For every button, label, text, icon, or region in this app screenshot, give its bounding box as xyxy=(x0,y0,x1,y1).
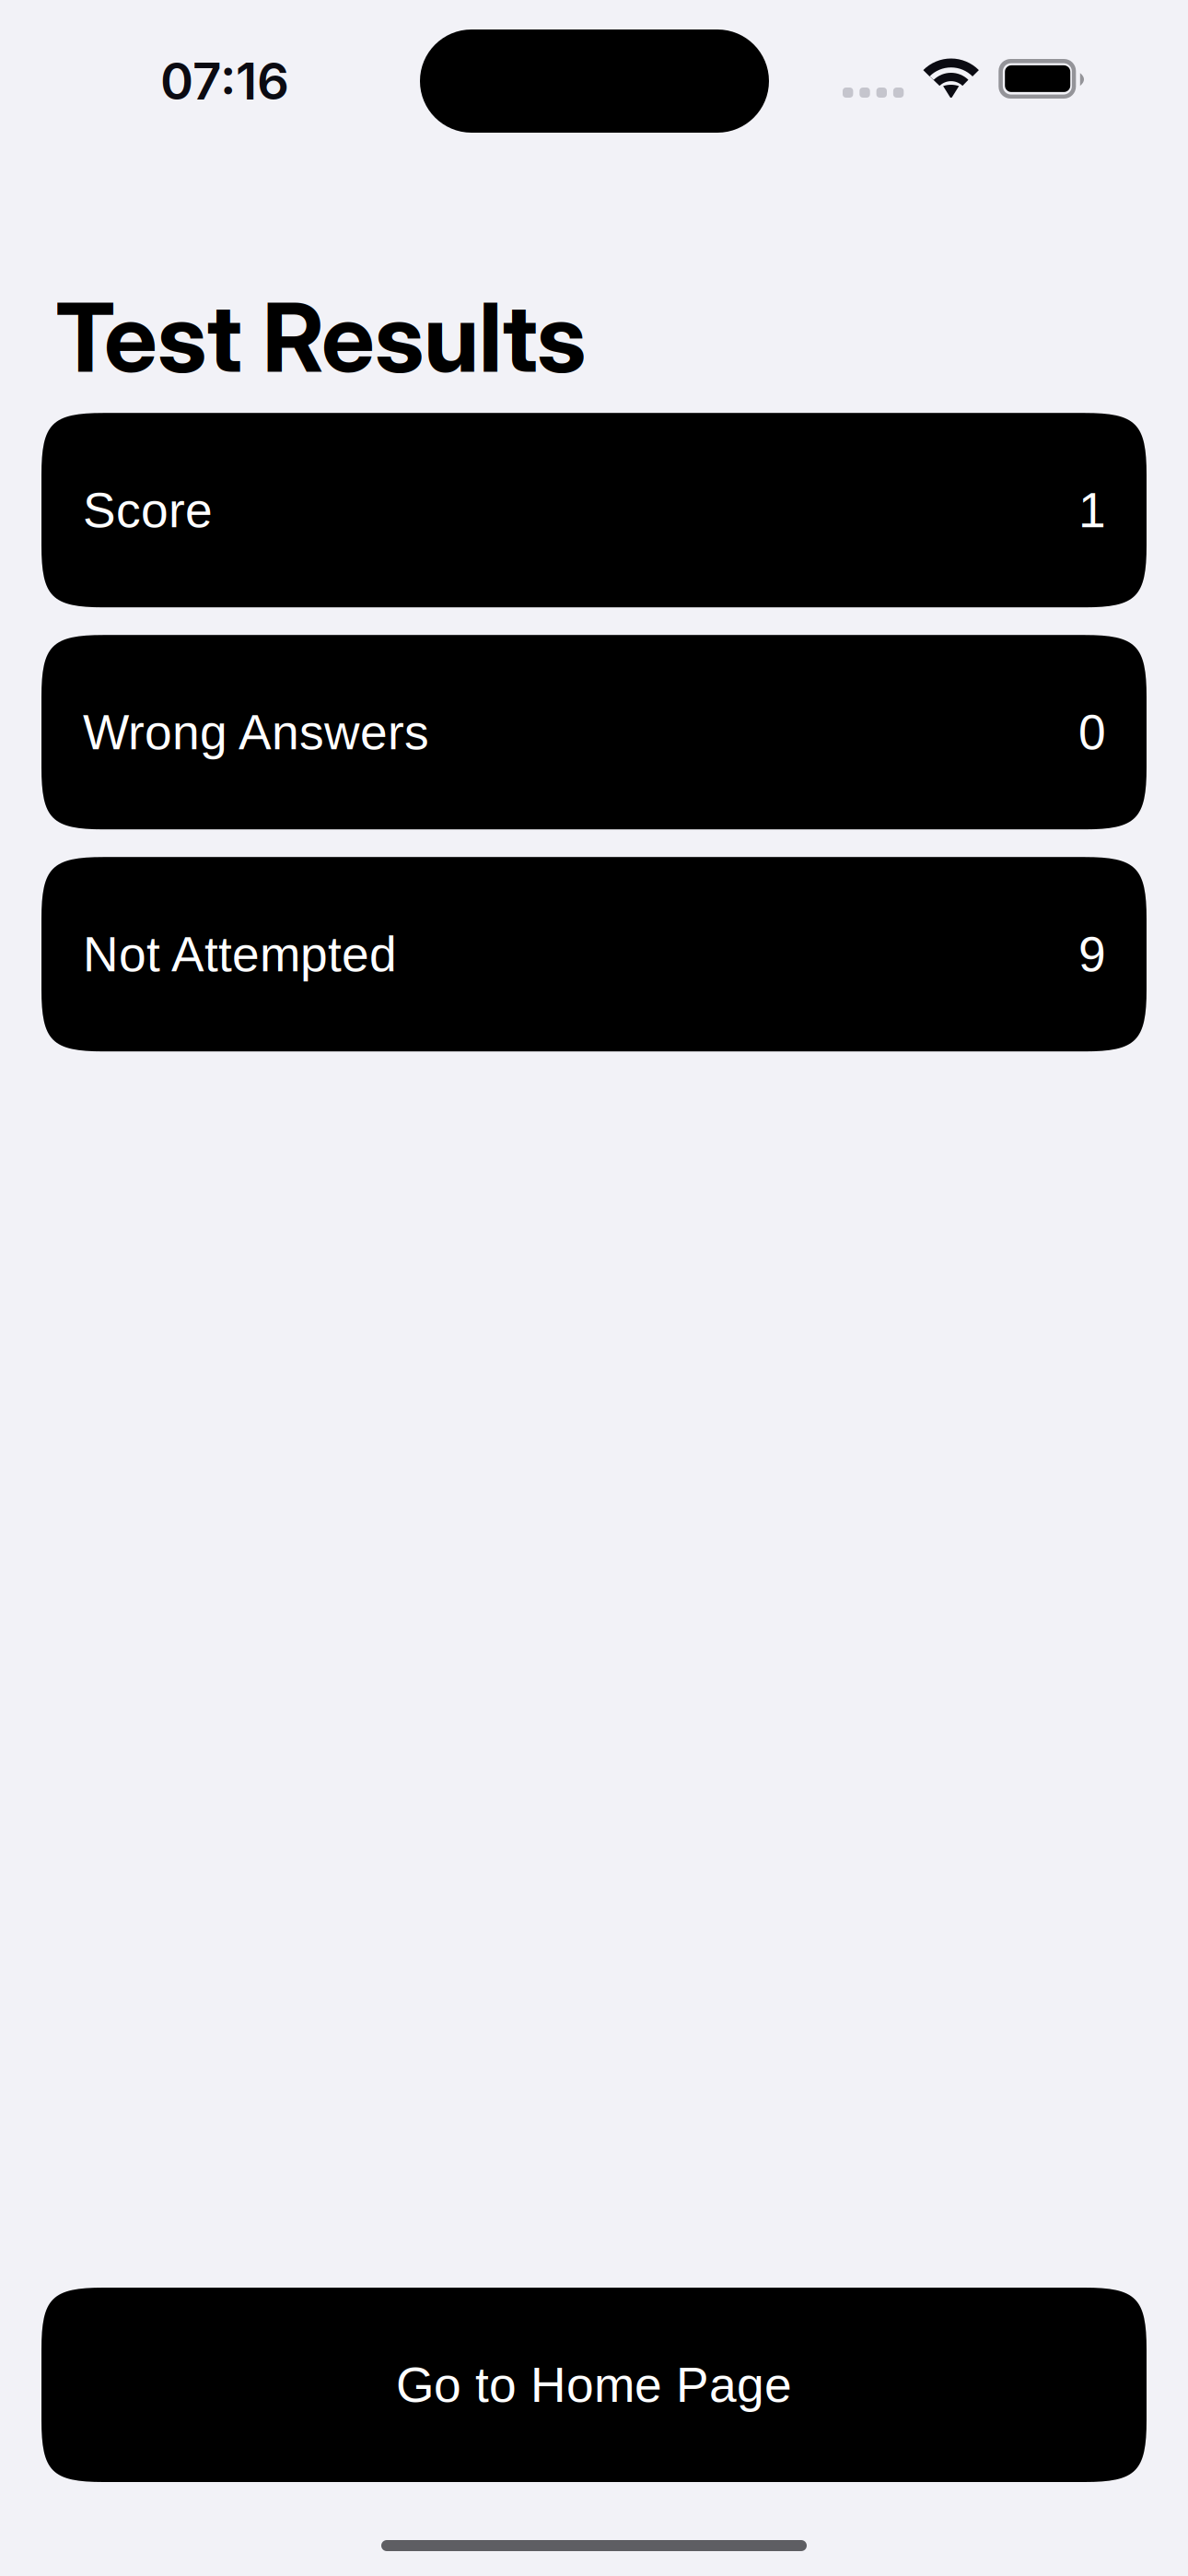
staticText: Go to Home Page xyxy=(396,2357,792,2412)
button[interactable]: Score xyxy=(41,413,1147,607)
button[interactable]: Wrong Answers xyxy=(41,635,1147,829)
button[interactable]: Not Attempted xyxy=(41,857,1147,1051)
staticText: Test Results xyxy=(55,280,586,395)
staticText: 1 xyxy=(1078,483,1106,538)
staticText: 0 xyxy=(1078,705,1106,760)
staticText: Not Attempted xyxy=(83,927,397,982)
staticText: 07:16 xyxy=(160,51,289,112)
staticText: Wrong Answers xyxy=(83,705,429,760)
staticText: Score xyxy=(83,483,213,538)
staticText: 9 xyxy=(1078,927,1106,982)
button[interactable]: Go to Home Page xyxy=(41,2288,1147,2482)
